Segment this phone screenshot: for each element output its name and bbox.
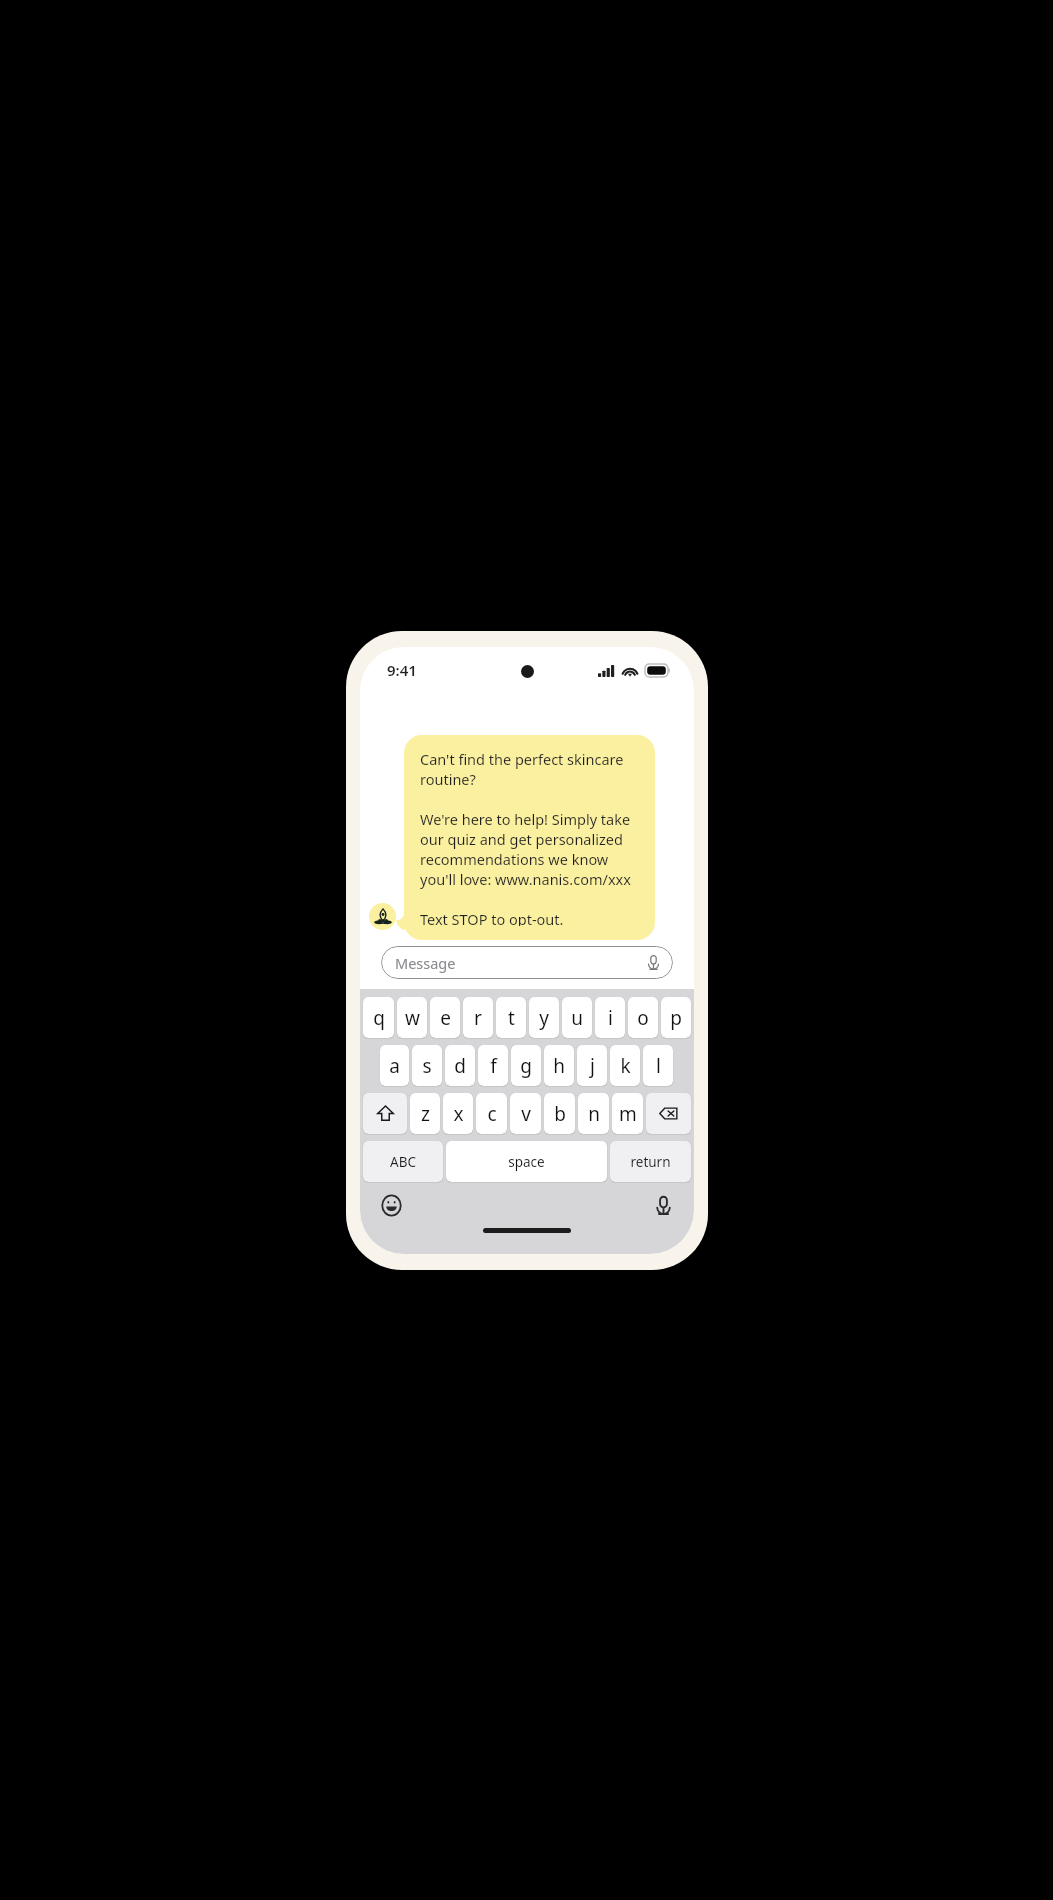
button[interactable]: z [410,1093,440,1134]
staticText: r [474,1005,482,1031]
button[interactable]: w [397,997,427,1038]
staticText: x [453,1101,464,1127]
staticText: l [656,1053,661,1079]
button[interactable]: c [476,1093,507,1134]
staticText: g [520,1053,532,1079]
button[interactable]: Sender avatar [369,903,396,930]
button[interactable]: e [430,997,460,1038]
button[interactable]: return [610,1141,691,1182]
button[interactable]: ABC [363,1141,443,1182]
button[interactable]: q [363,997,394,1038]
button[interactable]: g [511,1045,541,1086]
staticText: a [389,1053,400,1079]
button[interactable]: space [446,1141,607,1182]
staticText: return [630,1153,671,1171]
button[interactable]: x [443,1093,473,1134]
button[interactable]: h [544,1045,574,1086]
staticText: Can't find the perfect skincare routine?… [420,749,639,926]
button[interactable]: p [661,997,691,1038]
button[interactable]: Emoji [376,1190,406,1220]
staticText: o [637,1005,649,1031]
staticText: w [405,1005,420,1031]
button[interactable]: s [412,1045,442,1086]
button[interactable]: a [380,1045,409,1086]
button[interactable]: n [578,1093,609,1134]
staticText: i [608,1005,613,1031]
staticText: d [454,1053,466,1079]
staticText: k [620,1053,631,1079]
button[interactable]: l [643,1045,673,1086]
button[interactable]: i [595,997,625,1038]
staticText: f [490,1053,497,1079]
button[interactable]: u [562,997,592,1038]
staticText: p [670,1005,682,1031]
staticText: 9:41 [387,660,417,680]
button[interactable]: Can't find the perfect skincare routine?… [404,735,655,940]
button[interactable]: j [577,1045,607,1086]
staticText: Message [395,953,646,973]
button[interactable]: v [510,1093,541,1134]
button[interactable]: y [529,997,559,1038]
button[interactable]: d [445,1045,475,1086]
staticText: ABC [390,1153,416,1171]
staticText: m [619,1101,637,1127]
button[interactable]: Shift [363,1093,407,1134]
button[interactable]: Backspace [646,1093,691,1134]
button[interactable]: r [463,997,493,1038]
button[interactable]: m [612,1093,643,1134]
staticText: t [508,1005,515,1031]
staticText: c [487,1101,497,1127]
button[interactable]: o [628,997,658,1038]
staticText: s [422,1053,432,1079]
button[interactable]: Message [381,946,673,979]
staticText: b [554,1101,566,1127]
button[interactable]: k [610,1045,640,1086]
button[interactable]: t [496,997,526,1038]
staticText: e [440,1005,451,1031]
staticText: z [421,1101,430,1127]
staticText: q [373,1005,385,1031]
staticText: n [588,1101,600,1127]
staticText: h [553,1053,565,1079]
staticText: v [521,1101,531,1127]
staticText: u [571,1005,583,1031]
staticText: j [590,1053,595,1079]
other: Voice input [646,955,661,970]
button[interactable]: Dictation [648,1190,678,1220]
staticText: y [539,1005,549,1031]
staticText: space [508,1153,545,1171]
button[interactable]: f [478,1045,508,1086]
button[interactable]: b [544,1093,575,1134]
